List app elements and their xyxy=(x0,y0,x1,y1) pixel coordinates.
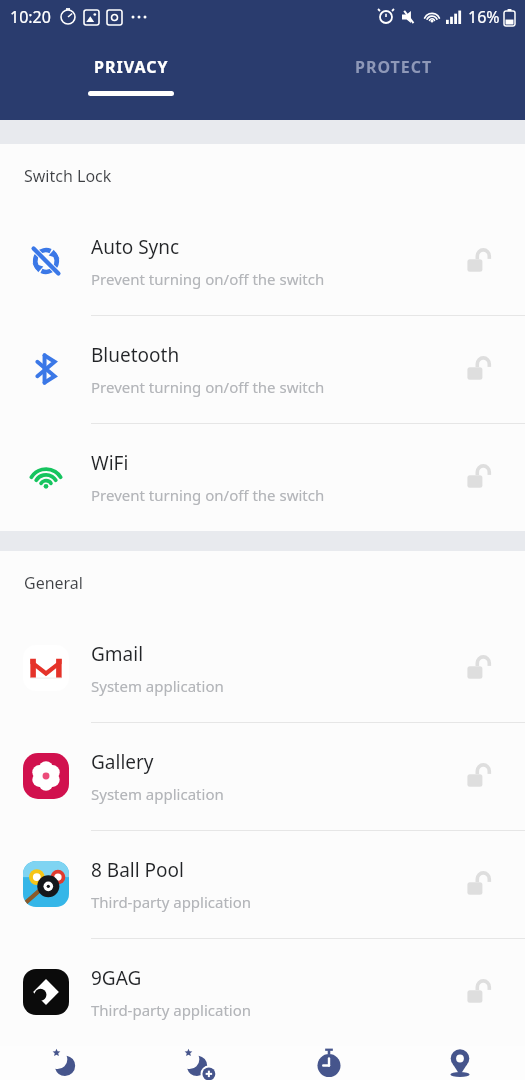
button[interactable]: Unlocked 9GAG xyxy=(435,938,525,1046)
button[interactable]: Unlocked Gmail xyxy=(435,614,525,722)
button[interactable]: Auto Sync xyxy=(0,207,525,315)
staticText: Third-party application xyxy=(91,892,252,912)
staticText: Prevent turning on/off the switch xyxy=(91,269,325,289)
button[interactable]: Unlocked Gallery xyxy=(435,722,525,830)
button[interactable]: Add night mode xyxy=(132,1046,263,1080)
button[interactable]: Unlocked WiFi xyxy=(435,423,525,531)
button[interactable]: 8 Ball Pool xyxy=(0,830,525,938)
button[interactable]: Unlocked Bluetooth xyxy=(435,315,525,423)
staticText: WiFi xyxy=(91,450,129,476)
staticText: Third-party application xyxy=(91,1000,252,1020)
staticText: Prevent turning on/off the switch xyxy=(91,485,325,505)
staticText: PRIVACY xyxy=(94,56,169,78)
staticText: Auto Sync xyxy=(91,234,180,260)
button[interactable]: PROTECT xyxy=(262,48,525,91)
button[interactable]: 9GAG xyxy=(0,938,525,1046)
staticText: PROTECT xyxy=(355,56,433,78)
staticText: Switch Lock xyxy=(24,165,112,187)
staticText: 8 Ball Pool xyxy=(91,857,184,883)
button[interactable]: Night mode xyxy=(0,1046,132,1080)
button[interactable]: Timer xyxy=(263,1046,394,1080)
button[interactable]: PRIVACY xyxy=(0,48,262,96)
staticText: Bluetooth xyxy=(91,342,180,368)
staticText: General xyxy=(24,572,83,594)
button[interactable]: Bluetooth xyxy=(0,315,525,423)
button[interactable]: Location xyxy=(394,1046,525,1080)
button[interactable]: WiFi xyxy=(0,423,525,531)
button[interactable]: Unlocked 8 Ball Pool xyxy=(435,830,525,938)
staticText: 9GAG xyxy=(91,965,142,991)
button[interactable]: Gmail xyxy=(0,614,525,722)
staticText: Gallery xyxy=(91,749,154,775)
staticText: 10:20 xyxy=(10,6,51,28)
button[interactable]: Unlocked Auto Sync xyxy=(435,207,525,315)
staticText: Prevent turning on/off the switch xyxy=(91,377,325,397)
button[interactable]: Gallery xyxy=(0,722,525,830)
staticText: System application xyxy=(91,784,224,804)
staticText: System application xyxy=(91,676,224,696)
staticText: 16% xyxy=(468,6,500,28)
staticText: Gmail xyxy=(91,641,144,667)
